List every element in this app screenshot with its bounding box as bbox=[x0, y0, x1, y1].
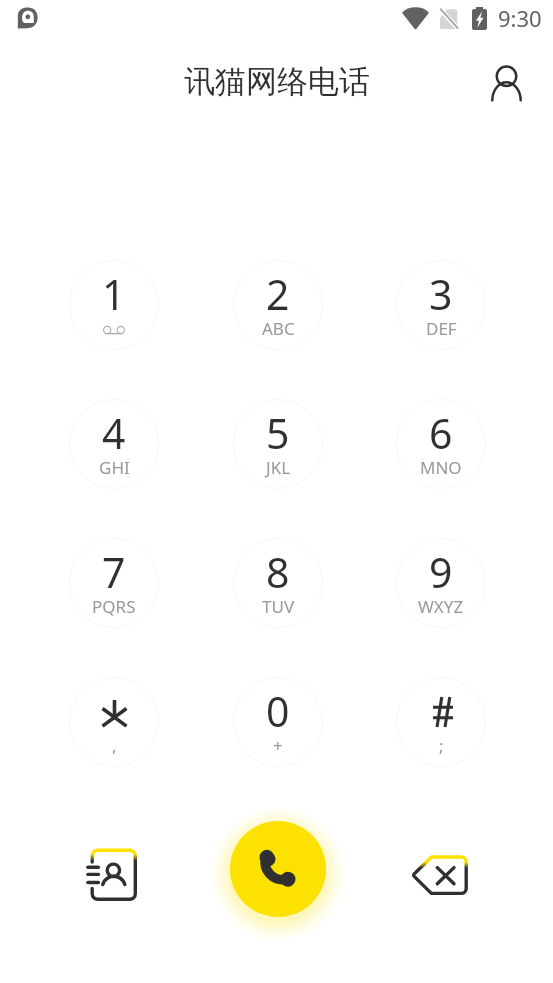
button[interactable]: 9 bbox=[396, 538, 486, 628]
staticText: PQRS bbox=[92, 595, 136, 618]
staticText: WXYZ bbox=[418, 595, 464, 618]
button[interactable]: 4 bbox=[69, 399, 159, 489]
staticText: + bbox=[273, 734, 283, 757]
staticText: 讯猫网络电话 bbox=[184, 62, 370, 101]
staticText: 7 bbox=[102, 544, 126, 600]
staticText: TUV bbox=[262, 595, 295, 618]
staticText: ABC bbox=[262, 317, 295, 340]
staticText: 9 bbox=[429, 544, 453, 600]
button[interactable]: Call bbox=[230, 821, 326, 917]
staticText: JKL bbox=[266, 456, 291, 479]
staticText: 6 bbox=[429, 405, 453, 461]
button[interactable]: ; bbox=[396, 677, 486, 767]
staticText: 4 bbox=[102, 405, 126, 461]
button[interactable]: 5 bbox=[233, 399, 323, 489]
staticText: MNO bbox=[420, 456, 462, 479]
staticText: 2 bbox=[266, 266, 290, 322]
staticText: DEF bbox=[426, 317, 457, 340]
staticText: 9:30 bbox=[498, 3, 542, 33]
staticText: ; bbox=[439, 734, 444, 757]
staticText: 0 bbox=[266, 683, 290, 739]
button[interactable]: 3 bbox=[396, 260, 486, 350]
button[interactable]: 1 bbox=[69, 260, 159, 350]
button[interactable]: 2 bbox=[233, 260, 323, 350]
button[interactable]: 6 bbox=[396, 399, 486, 489]
button[interactable]: , bbox=[69, 677, 159, 767]
button[interactable]: Account bbox=[479, 55, 534, 110]
button[interactable]: Backspace bbox=[398, 833, 482, 917]
staticText: 1 bbox=[102, 266, 126, 322]
staticText: , bbox=[112, 734, 117, 757]
staticText: 8 bbox=[266, 544, 290, 600]
button[interactable]: 8 bbox=[233, 538, 323, 628]
staticText: 5 bbox=[266, 405, 290, 461]
button[interactable]: Contacts bbox=[70, 833, 154, 917]
button[interactable]: 7 bbox=[69, 538, 159, 628]
staticText: GHI bbox=[99, 456, 130, 479]
button[interactable]: 0 bbox=[233, 677, 323, 767]
staticText: 3 bbox=[429, 266, 453, 322]
